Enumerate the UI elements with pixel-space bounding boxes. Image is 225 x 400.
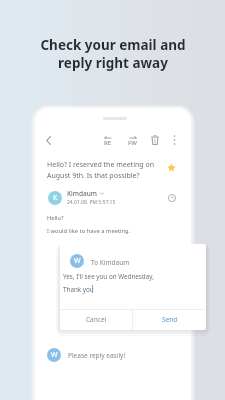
staticText: Hello? bbox=[47, 214, 64, 222]
staticText: To Kimdaum bbox=[91, 258, 130, 267]
button[interactable]: Forward bbox=[122, 129, 142, 151]
staticText: FW bbox=[128, 139, 137, 147]
button[interactable]: Reply bbox=[98, 129, 118, 151]
button[interactable]: Schedule bbox=[166, 192, 178, 204]
staticText: Yes, I'll see you on Wednesday, Thank yo… bbox=[63, 272, 154, 294]
staticText: Please reply easily! bbox=[68, 351, 126, 360]
staticText: 24.01.08. PM 5:57:15 bbox=[67, 199, 116, 206]
staticText: Send bbox=[162, 315, 178, 324]
staticText: Kimdaum bbox=[67, 189, 97, 198]
staticText: Hello? I reserved the meeting on August … bbox=[47, 160, 162, 180]
staticText: Cancel bbox=[86, 315, 107, 324]
staticText: W bbox=[51, 350, 58, 360]
button[interactable]: Delete bbox=[144, 129, 166, 151]
button[interactable]: More options bbox=[163, 129, 185, 151]
button[interactable]: Back bbox=[37, 129, 59, 151]
button[interactable]: Send bbox=[133, 309, 206, 330]
button[interactable]: Star bbox=[164, 160, 178, 174]
staticText: Check your email and reply right away bbox=[40, 36, 186, 72]
button[interactable]: Cancel bbox=[60, 309, 132, 330]
staticText: K bbox=[53, 193, 58, 203]
staticText: RE bbox=[104, 139, 112, 147]
staticText: I would like to have a meeting. bbox=[47, 227, 131, 235]
staticText: W bbox=[74, 256, 81, 266]
